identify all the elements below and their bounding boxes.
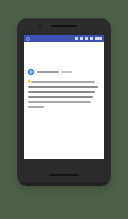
button[interactable] — [28, 69, 100, 111]
